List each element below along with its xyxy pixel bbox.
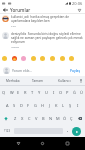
staticText: A [6,103,9,108]
button[interactable]: Backspace [75,112,85,125]
staticText: G [34,103,37,108]
button[interactable]: Ç [68,112,75,125]
staticText: B [42,116,45,121]
staticText: F [27,103,30,108]
button[interactable]: Q [0,86,8,99]
button[interactable] [63,125,72,137]
button[interactable]: Y [36,86,43,99]
button[interactable]: G [32,99,39,112]
staticText: I [77,103,79,108]
button[interactable]: S [11,99,18,112]
button[interactable]: I [74,99,81,112]
staticText: P [66,90,69,95]
button[interactable]: Emoji reaction [20,55,26,61]
staticText: S [13,103,16,108]
button[interactable]: Voice input [77,76,85,85]
button[interactable]: K [53,99,60,112]
button[interactable]: E [15,86,22,99]
staticText: C [28,116,31,121]
button[interactable]: C [26,112,33,125]
button[interactable]: V [33,112,40,125]
button[interactable]: D [18,99,25,112]
staticText: U [45,90,48,95]
button[interactable]: R [22,86,29,99]
staticText: Ö [63,116,67,121]
button[interactable]: N [47,112,54,125]
staticText: Tamam [32,79,44,83]
staticText: Y [38,90,41,95]
staticText: N [49,116,53,121]
button[interactable]: Emoji reaction [39,55,45,61]
button[interactable]: Paylaş [69,67,82,73]
staticText: Ş [69,103,72,108]
staticText: E [17,90,20,95]
staticText: kullanici_adi harika olmuş gerçekten de … [11,15,69,23]
button[interactable]: Back [12,137,25,150]
staticText: denizyildiz Sonunda birisi doğru söyledi… [11,32,83,44]
button[interactable]: J [46,99,53,112]
button[interactable]: Ü [78,86,85,99]
button[interactable]: A [4,99,11,112]
button[interactable]: Kullanıcı [51,76,77,85]
staticText: Yanıtla [11,45,19,48]
button[interactable]: B [40,112,47,125]
staticText: M [56,116,60,121]
button[interactable]: Emoji reaction [1,55,7,61]
staticText: K [55,103,58,108]
button[interactable]: Emoji reaction [49,55,55,61]
staticText: L [62,103,65,108]
staticText: O [59,90,63,95]
button[interactable]: Z [11,112,19,125]
button[interactable]: Send [72,127,81,136]
staticText: Kullanıcı [58,79,71,83]
button[interactable]: W [8,86,15,99]
button[interactable]: F [25,99,32,112]
button[interactable]: X [19,112,26,125]
staticText: Yorum ekle... [12,68,33,72]
button[interactable]: Home [36,137,49,150]
button[interactable]: Filter [77,8,82,13]
button[interactable]: Emoji reaction [59,55,65,61]
button[interactable]: O [57,86,64,99]
button[interactable]: Back [2,7,8,13]
button[interactable]: T [29,86,36,99]
staticText: Merhaba [6,79,20,83]
button[interactable]: Tamam [25,76,51,85]
button[interactable]: kullanici_adi harika olmuş gerçekten de … [0,15,85,27]
staticText: H [41,103,44,108]
button[interactable]: Merhaba [0,76,25,85]
staticText: Ğ [73,90,76,95]
button[interactable]: Emoji reaction [30,55,36,61]
staticText: Paylaş [70,68,81,72]
staticText: J [49,103,51,108]
button[interactable]: Caps lock [0,112,11,125]
button[interactable]: L [60,99,67,112]
button[interactable]: Recents [61,137,74,150]
button[interactable]: ?123 [0,125,14,137]
staticText: Ç [70,116,73,121]
staticText: D [20,103,23,108]
staticText: I [53,90,55,95]
button[interactable]: U [43,86,50,99]
staticText: W [10,90,14,95]
button[interactable]: denizyildiz Sonunda birisi doğru söyledi… [0,32,85,48]
button[interactable]: Emoji reaction [68,55,74,61]
staticText: Z [14,116,17,121]
staticText: Yorumlar [10,7,31,13]
staticText: ?123 [4,129,11,133]
button[interactable]: Emoji reaction [11,55,17,61]
button[interactable]: P [64,86,71,99]
button[interactable]: M [54,112,61,125]
button[interactable]: Ğ [71,86,78,99]
staticText: X [21,116,24,121]
button[interactable]: Ö [61,112,68,125]
staticText: Ü [80,90,83,95]
staticText: Q [2,90,6,95]
button[interactable]: H [39,99,46,112]
staticText: 20:06 [72,1,83,6]
staticText: V [35,116,38,121]
button[interactable]: I [50,86,57,99]
staticText: T [31,90,34,95]
button[interactable]: Ş [67,99,74,112]
